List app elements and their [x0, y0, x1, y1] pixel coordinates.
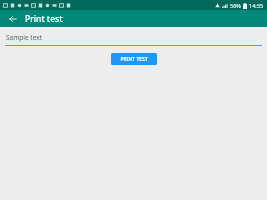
staticText: Sample text — [6, 33, 42, 42]
staticText: 56% — [230, 2, 241, 9]
staticText: 14:35 — [249, 2, 264, 9]
button[interactable]: Sample text — [5, 33, 262, 46]
staticText: PRINT TEST — [120, 56, 148, 63]
button[interactable]: PRINT TEST — [111, 53, 157, 65]
staticText: Print test — [25, 13, 63, 25]
button[interactable]: Back — [6, 12, 20, 26]
